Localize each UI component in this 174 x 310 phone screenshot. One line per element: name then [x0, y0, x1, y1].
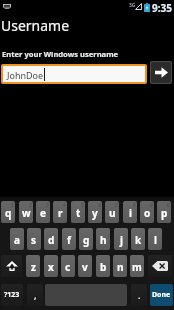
staticText: u [109, 206, 116, 220]
staticText: 4 [63, 202, 66, 209]
staticText: o [144, 206, 151, 220]
staticText: a [14, 233, 20, 247]
button[interactable]: j [114, 228, 128, 250]
button[interactable]: Comma [27, 284, 43, 306]
staticText: w [22, 206, 31, 220]
staticText: Username [1, 16, 70, 35]
staticText: 2 [29, 202, 32, 209]
staticText: 9 [150, 202, 153, 209]
button[interactable]: a [10, 228, 24, 250]
button[interactable]: n [113, 255, 127, 277]
button[interactable]: Shift [1, 255, 22, 277]
button[interactable]: 2 [19, 201, 33, 223]
staticText: j [120, 233, 123, 247]
staticText: JohnDoe [7, 69, 44, 81]
staticText: e [40, 206, 46, 220]
button[interactable]: x [44, 255, 58, 277]
staticText: f [67, 233, 71, 247]
button[interactable]: 6 [88, 201, 102, 223]
button[interactable]: JohnDoe [3, 66, 145, 82]
button[interactable]: 7 [105, 201, 119, 223]
staticText: z [31, 260, 36, 274]
button[interactable]: Done [150, 284, 173, 306]
staticText: 5 [81, 202, 84, 209]
button[interactable]: Period [131, 284, 147, 306]
staticText: l [154, 233, 157, 247]
staticText: 9:35 [152, 1, 172, 14]
staticText: . [138, 289, 141, 301]
staticText: 0 [167, 202, 170, 209]
staticText: g [83, 233, 90, 247]
button[interactable]: m [130, 255, 144, 277]
staticText: ?123 [4, 290, 20, 300]
staticText: 6 [98, 202, 101, 209]
button[interactable]: 0 [157, 201, 171, 223]
button[interactable]: Backspace [148, 255, 172, 277]
staticText: y [92, 206, 98, 220]
button[interactable]: f [62, 228, 76, 250]
button[interactable]: 3 [36, 201, 50, 223]
staticText: 8 [133, 202, 136, 209]
button[interactable]: d [44, 228, 58, 250]
staticText: Enter your Windows username [2, 49, 119, 59]
button[interactable]: 8 [123, 201, 137, 223]
staticText: b [100, 260, 107, 274]
button[interactable]: 9 [140, 201, 154, 223]
staticText: v [82, 260, 88, 274]
staticText: r [58, 206, 63, 220]
staticText: q [5, 206, 12, 220]
staticText: m [132, 260, 142, 274]
button[interactable]: z [26, 255, 40, 277]
staticText: n [117, 260, 124, 274]
button[interactable]: Submit [151, 62, 171, 83]
staticText: i [129, 206, 132, 220]
button[interactable]: 5 [71, 201, 85, 223]
button[interactable]: 4 [53, 201, 67, 223]
staticText: 3 [46, 202, 49, 209]
staticText: s [31, 233, 37, 247]
staticText: , [34, 289, 37, 301]
staticText: 7 [115, 202, 118, 209]
staticText: t [76, 206, 81, 220]
staticText: x [48, 260, 54, 274]
staticText: p [161, 206, 168, 220]
staticText: 1 [11, 202, 14, 209]
staticText: k [135, 233, 142, 247]
staticText: d [48, 233, 55, 247]
button[interactable]: 1 [1, 201, 15, 223]
button[interactable]: h [96, 228, 110, 250]
button[interactable]: Symbols [1, 284, 23, 306]
staticText: Done [152, 290, 171, 300]
button[interactable]: k [131, 228, 145, 250]
button[interactable]: v [78, 255, 92, 277]
button[interactable]: b [96, 255, 110, 277]
staticText: 3G [129, 2, 136, 9]
staticText: h [100, 233, 107, 247]
button[interactable]: c [61, 255, 75, 277]
button[interactable]: l [148, 228, 162, 250]
button[interactable]: g [79, 228, 93, 250]
staticText: c [65, 260, 71, 274]
button[interactable]: s [27, 228, 41, 250]
